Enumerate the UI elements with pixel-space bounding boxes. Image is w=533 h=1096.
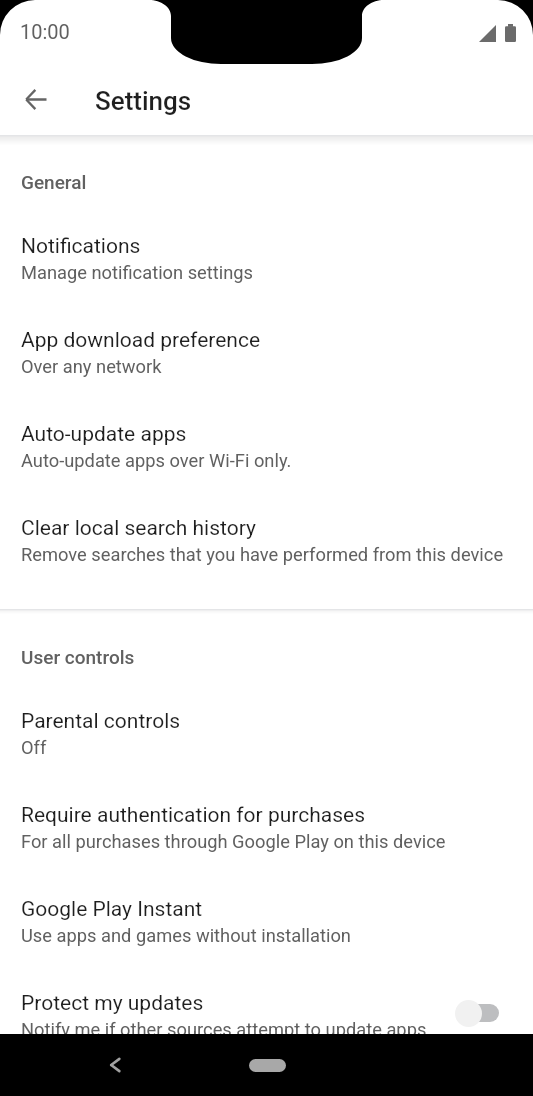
staticText: Remove searches that you have performed … (21, 544, 504, 565)
button[interactable]: Google Play Instant (0, 879, 533, 957)
staticText: User controls (21, 646, 135, 668)
button[interactable]: Protect my updates (455, 998, 499, 1028)
button[interactable]: Auto-update apps (0, 404, 533, 482)
button[interactable]: Clear local search history (0, 498, 533, 576)
staticText: Google Play Instant (21, 897, 203, 922)
staticText: Notifications (21, 234, 141, 259)
staticText: General (21, 171, 87, 193)
staticText: Clear local search history (21, 516, 256, 541)
button[interactable]: Parental controls (0, 691, 533, 769)
staticText: 10:00 (20, 20, 70, 43)
staticText: Require authentication for purchases (21, 803, 365, 828)
staticText: Parental controls (21, 709, 181, 734)
staticText: Notify me if other sources attempt to up… (21, 1019, 427, 1040)
staticText: Over any network (21, 356, 162, 377)
staticText: App download preference (21, 328, 261, 353)
staticText: Manage notification settings (21, 262, 254, 283)
button[interactable]: Notifications (0, 216, 533, 294)
staticText: Settings (95, 86, 192, 116)
button[interactable]: Home (249, 1059, 286, 1072)
button[interactable]: Protect my updates (0, 973, 533, 1051)
button[interactable]: Back (10, 74, 61, 125)
staticText: Off (21, 737, 47, 758)
button[interactable]: Back (104, 1054, 128, 1076)
staticText: Protect my updates (21, 991, 204, 1016)
button[interactable]: Require authentication for purchases (0, 785, 533, 863)
button[interactable]: App download preference (0, 310, 533, 388)
staticText: Auto-update apps (21, 422, 187, 447)
staticText: Auto-update apps over Wi-Fi only. (21, 450, 292, 471)
staticText: For all purchases through Google Play on… (21, 831, 446, 852)
staticText: Use apps and games without installation (21, 925, 351, 946)
